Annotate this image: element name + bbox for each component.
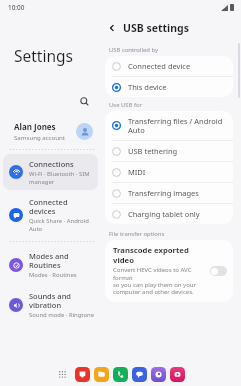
staticText: Use USB for	[109, 101, 142, 109]
staticText: Transcode exported video	[113, 245, 207, 265]
button[interactable]: My Files	[94, 367, 109, 382]
staticText: Charging tablet only	[128, 209, 200, 219]
button[interactable]: Alan Jones	[0, 118, 101, 146]
button[interactable]: Internet	[151, 367, 166, 382]
button[interactable]: Galaxy Store	[170, 367, 185, 382]
staticText: Quick Share · Android Auto	[29, 217, 89, 232]
staticText: USB controlled by	[109, 46, 158, 54]
staticText: This device	[128, 82, 167, 92]
staticText: Transferring images	[128, 188, 199, 198]
staticText: Settings	[14, 45, 73, 66]
staticText: Convert HEVC videos to AVC format so you…	[113, 266, 207, 296]
staticText: 10:00	[8, 3, 25, 12]
button[interactable]: Messages	[132, 367, 147, 382]
staticText: USB tethering	[128, 146, 178, 156]
staticText: MIDI	[128, 167, 146, 177]
staticText: Modes · Routines	[29, 271, 77, 279]
button[interactable]: Gallery	[75, 367, 90, 382]
staticText: Samsung account	[14, 133, 65, 141]
staticText: Alan Jones	[14, 121, 56, 132]
staticText: Wi-Fi · Bluetooth · SIM manager	[29, 170, 90, 185]
button[interactable]: Search settings	[0, 92, 101, 110]
staticText: Sounds and vibration	[29, 291, 71, 310]
button[interactable]: Connected devices	[3, 192, 98, 237]
button[interactable]: Modes and Routines	[3, 246, 98, 284]
staticText: Modes and Routines	[29, 251, 69, 270]
button[interactable]: Charging tablet only	[105, 204, 233, 224]
button[interactable]: MIDI	[105, 162, 233, 182]
staticText: File transfer options	[109, 230, 165, 238]
button[interactable]: Back	[103, 19, 121, 37]
button[interactable]: This device	[105, 77, 233, 97]
staticText: Connected device	[128, 61, 191, 71]
button[interactable]: Phone	[113, 367, 128, 382]
button[interactable]: Sounds and vibration	[3, 286, 98, 324]
button[interactable]: Transferring images	[105, 183, 233, 203]
button[interactable]: Connected device	[105, 56, 233, 76]
staticText: USB settings	[123, 21, 189, 35]
button[interactable]: USB tethering	[105, 141, 233, 161]
button[interactable]: Transferring files / Android Auto	[105, 111, 233, 140]
button[interactable]: Transcode exported video	[105, 240, 233, 302]
button[interactable]: All apps	[55, 367, 69, 381]
button[interactable]: Transcode exported video toggle	[210, 266, 227, 276]
button[interactable]: Connections	[3, 154, 98, 190]
staticText: Sound mode · Ringtone	[29, 311, 94, 319]
staticText: Connected devices	[29, 197, 94, 216]
staticText: Connections	[29, 159, 74, 169]
staticText: Transferring files / Android Auto	[128, 116, 223, 135]
